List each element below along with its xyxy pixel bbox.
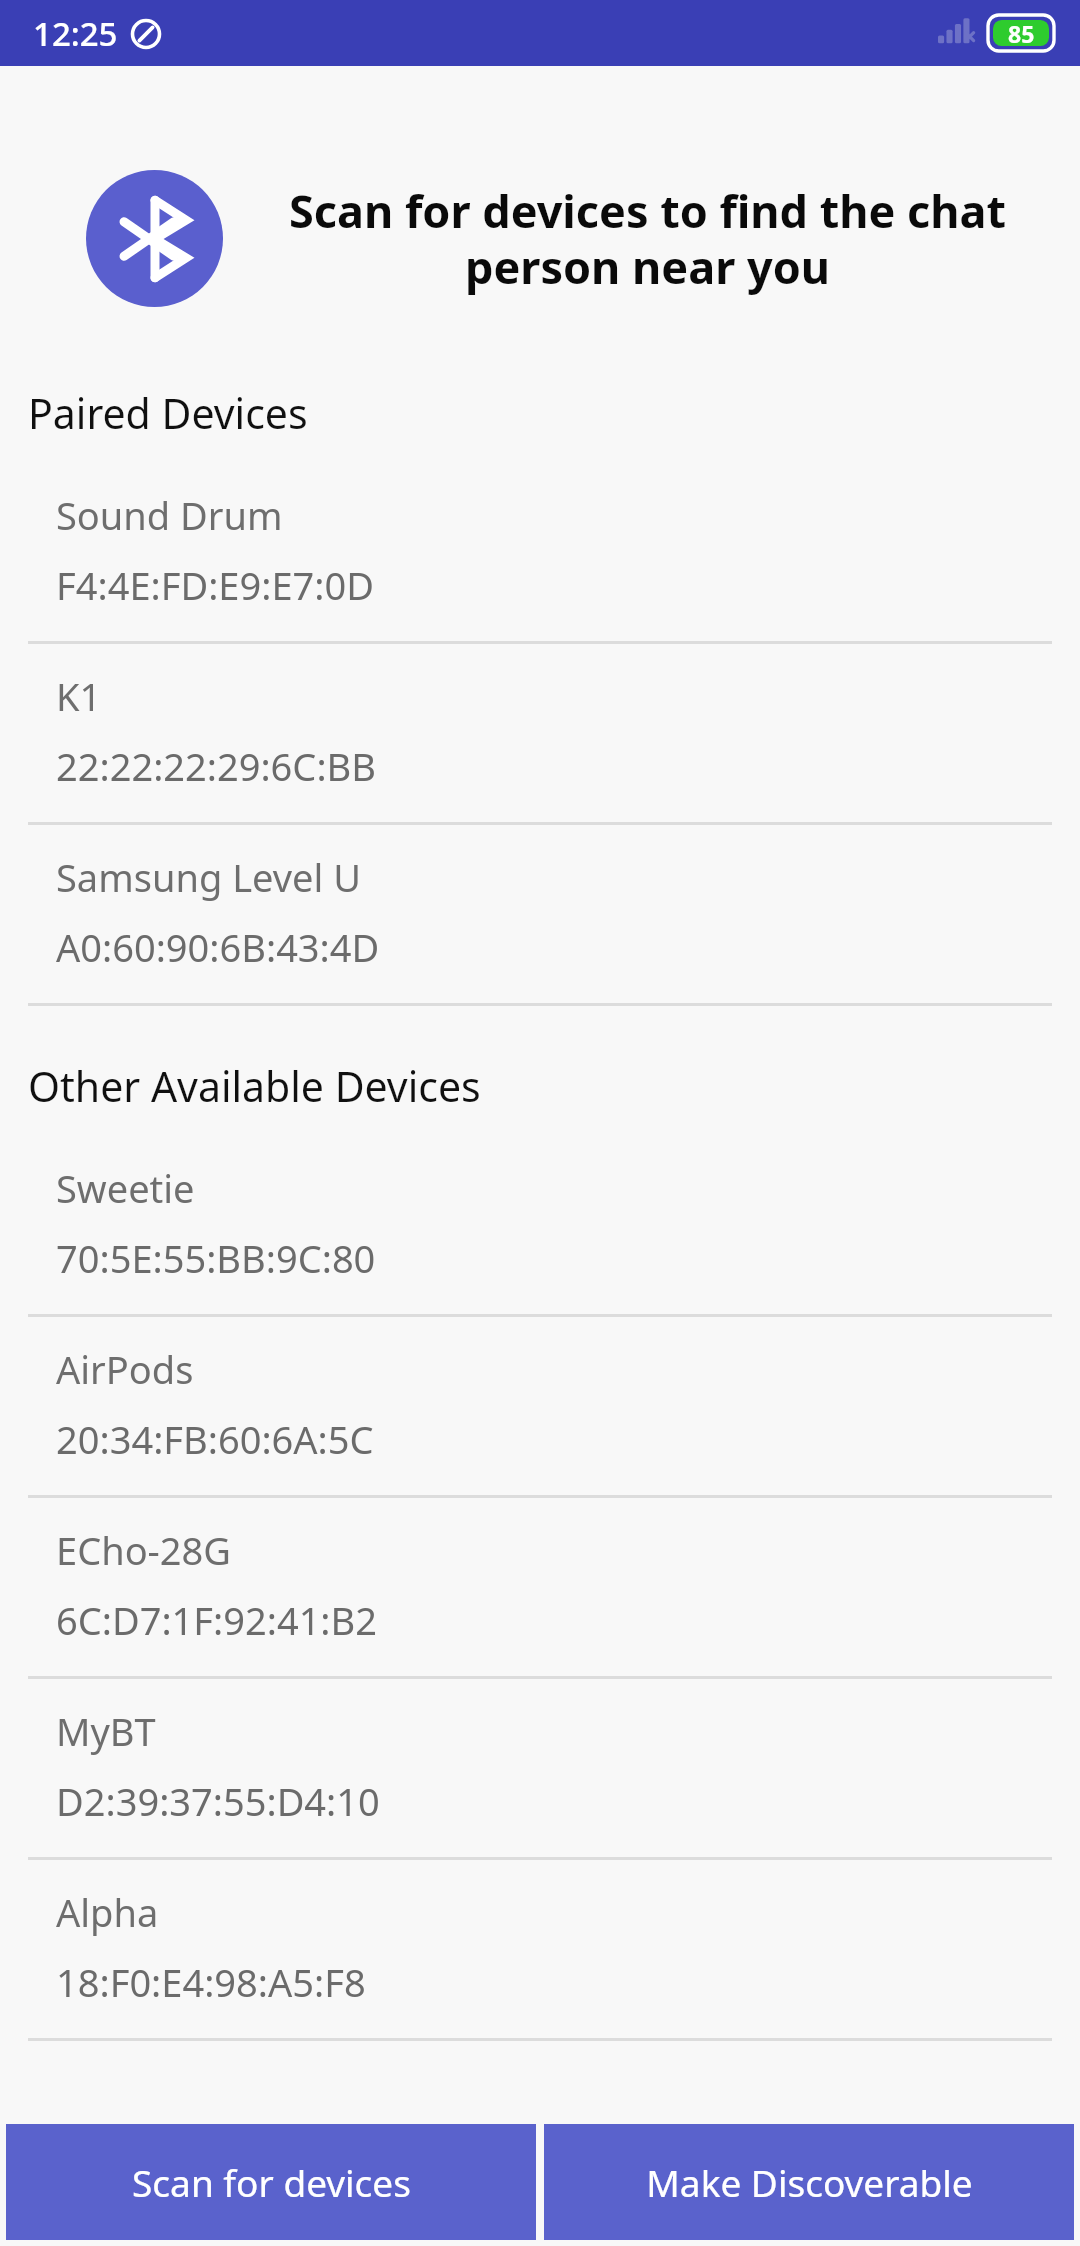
staticText: 20:34:FB:60:6A:5C [56,1413,374,1465]
staticText: AirPods [56,1343,194,1395]
staticText: Other Available Devices [28,1058,481,1114]
staticText: Scan for devices to find the chat person… [255,180,1040,297]
staticText: MyBT [56,1705,156,1757]
staticText: D2:39:37:55:D4:10 [56,1775,380,1827]
staticText: Paired Devices [28,385,308,441]
staticText: 18:F0:E4:98:A5:F8 [56,1956,366,2008]
staticText: Samsung Level U [56,851,361,903]
staticText: 12:25 [33,11,118,56]
button[interactable]: K1 [0,644,1080,822]
staticText: Sound Drum [56,489,283,541]
staticText: 70:5E:55:BB:9C:80 [56,1232,376,1284]
staticText: ECho-28G [56,1524,231,1576]
button[interactable]: Sweetie [0,1136,1080,1314]
staticText: Make Discoverable [646,2157,973,2207]
button[interactable]: Alpha [0,1860,1080,2038]
button[interactable]: Scan for devices [6,2124,536,2240]
staticText: Scan for devices [132,2157,411,2207]
staticText: A0:60:90:6B:43:4D [56,921,380,973]
staticText: Alpha [56,1886,159,1938]
button[interactable]: Samsung Level U [0,825,1080,1003]
staticText: 85 [1008,18,1035,49]
staticText: 22:22:22:29:6C:BB [56,740,376,792]
button[interactable]: Make Discoverable [544,2124,1074,2240]
button[interactable]: Sound Drum [0,463,1080,641]
staticText: 6C:D7:1F:92:41:B2 [56,1594,377,1646]
staticText: F4:4E:FD:E9:E7:0D [56,559,374,611]
button[interactable]: MyBT [0,1679,1080,1857]
button[interactable]: ECho-28G [0,1498,1080,1676]
staticText: K1 [56,670,102,722]
button[interactable]: AirPods [0,1317,1080,1495]
other: Bluetooth [86,170,223,307]
staticText: Sweetie [56,1162,195,1214]
